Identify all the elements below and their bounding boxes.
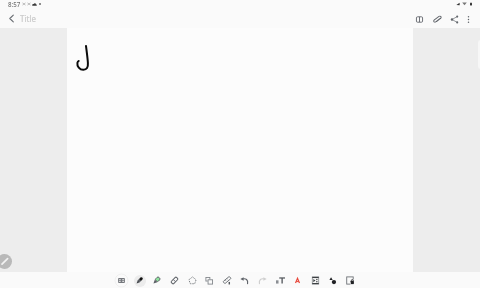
staticText: 8:57 bbox=[8, 0, 21, 8]
button[interactable]: Page view bbox=[411, 11, 428, 28]
button[interactable]: Insert image bbox=[307, 274, 324, 287]
button[interactable]: Highlighter bbox=[148, 274, 165, 287]
button[interactable]: Eraser bbox=[166, 274, 183, 287]
button[interactable]: Lock page bbox=[342, 274, 359, 287]
button[interactable]: Attach bbox=[429, 11, 446, 28]
button[interactable]: Text bbox=[272, 274, 289, 287]
button[interactable]: Undo bbox=[236, 274, 253, 287]
button[interactable]: Select bbox=[201, 274, 218, 287]
button[interactable]: Redo bbox=[254, 274, 271, 287]
staticText: Title bbox=[20, 13, 36, 24]
button[interactable]: Lasso select bbox=[184, 274, 201, 287]
button[interactable]: Back bbox=[3, 11, 20, 28]
button[interactable]: Share bbox=[446, 11, 463, 28]
button[interactable]: Keyboard bbox=[113, 274, 130, 287]
button[interactable]: More options bbox=[460, 11, 477, 28]
button[interactable]: Shapes bbox=[324, 274, 341, 287]
button[interactable]: Text colour bbox=[289, 274, 306, 287]
button[interactable]: Ruler bbox=[219, 274, 236, 287]
button[interactable]: Pen bbox=[131, 274, 148, 287]
button[interactable]: Pen tool bbox=[0, 254, 12, 269]
